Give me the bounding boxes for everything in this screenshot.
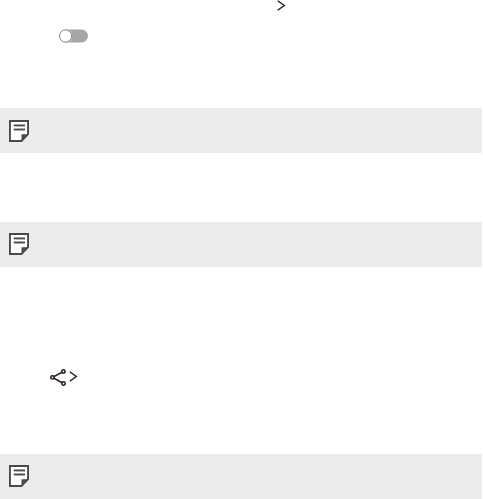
button[interactable]: Note row 1: [0, 108, 482, 153]
button[interactable]: Share: [50, 369, 78, 386]
button[interactable]: Note row 3: [0, 454, 482, 499]
button[interactable]: Toggle, off: [59, 29, 88, 43]
button[interactable]: Open: [277, 0, 285, 11]
button[interactable]: Note row 2: [0, 222, 482, 267]
